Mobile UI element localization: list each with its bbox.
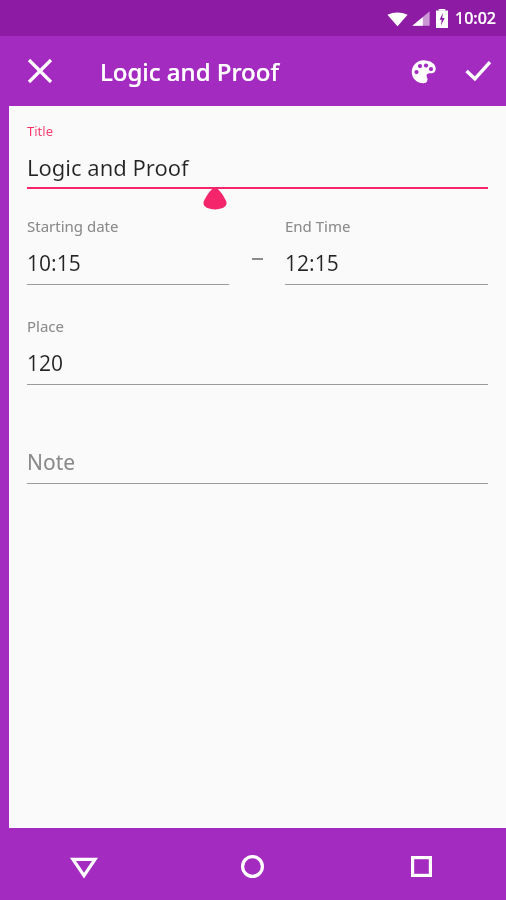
button[interactable]: Color palette — [396, 44, 450, 98]
staticText: Title — [27, 122, 53, 140]
button[interactable]: Home — [168, 832, 337, 900]
staticText: Logic and Proof — [27, 152, 189, 182]
staticText: 10:02 — [455, 7, 496, 29]
staticText: Logic and Proof — [100, 55, 279, 88]
staticText: Starting date — [27, 216, 119, 236]
staticText: Place — [27, 316, 65, 336]
staticText: Note — [27, 448, 76, 477]
button[interactable]: Recents — [337, 832, 506, 900]
staticText: 12:15 — [285, 249, 339, 278]
button[interactable]: Close — [14, 45, 66, 97]
staticText: End Time — [285, 216, 351, 236]
button[interactable]: Back — [0, 832, 168, 900]
staticText: 10:15 — [27, 249, 81, 278]
button[interactable]: Save — [450, 43, 506, 99]
staticText: 120 — [27, 349, 64, 378]
